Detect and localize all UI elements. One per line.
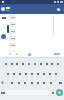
button[interactable]: Send xyxy=(28,53,31,56)
button[interactable] xyxy=(9,43,16,48)
button[interactable] xyxy=(9,15,16,20)
button[interactable] xyxy=(9,29,16,34)
button[interactable] xyxy=(9,36,16,41)
button[interactable]: Shift xyxy=(1,81,4,84)
button[interactable]: More options xyxy=(57,8,60,11)
button[interactable] xyxy=(9,22,16,27)
button[interactable]: Send message xyxy=(56,89,63,96)
button[interactable] xyxy=(9,50,16,52)
button[interactable]: Profile xyxy=(1,7,5,11)
